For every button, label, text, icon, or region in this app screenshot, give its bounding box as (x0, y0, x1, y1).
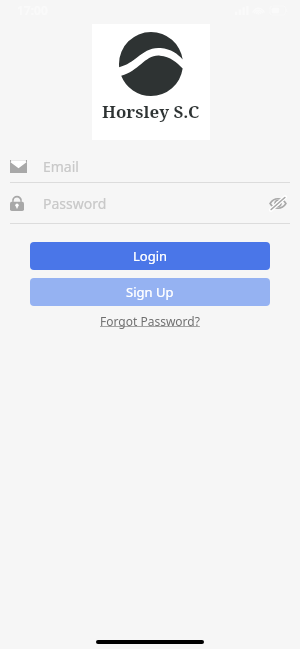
button[interactable]: Sign Up (30, 278, 270, 306)
staticText: Login (133, 247, 168, 265)
button[interactable]: Show password (266, 191, 290, 215)
staticText: Horsley S.C (102, 100, 200, 123)
button[interactable]: Email (0, 150, 300, 182)
staticText: Forgot Password? (100, 313, 200, 329)
staticText: Sign Up (126, 283, 174, 301)
button[interactable]: Password (0, 183, 300, 223)
staticText: Email (43, 157, 79, 176)
button[interactable]: Login (30, 242, 270, 270)
staticText: Password (43, 194, 107, 213)
button[interactable]: Forgot Password? (96, 311, 204, 331)
